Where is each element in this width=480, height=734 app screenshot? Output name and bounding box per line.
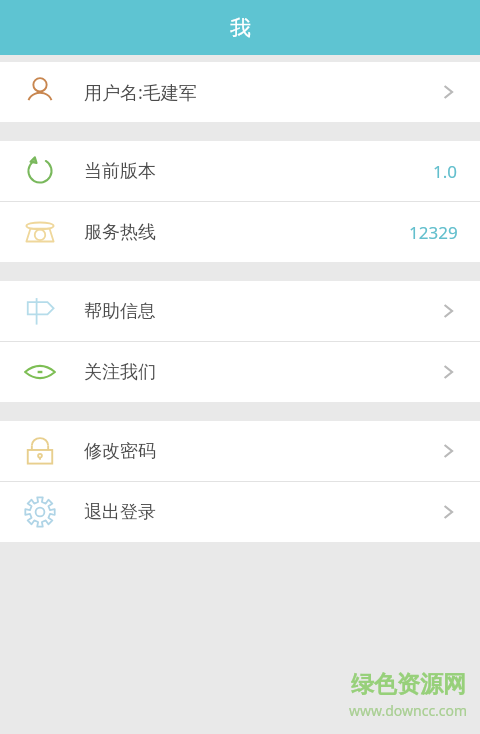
staticText: 帮助信息 (84, 300, 156, 323)
button[interactable]: 用户名:毛建军 (0, 62, 480, 122)
other: Open (438, 502, 458, 522)
other: Open (438, 441, 458, 461)
staticText: 修改密码 (84, 440, 156, 463)
button[interactable]: 当前版本 (0, 141, 480, 201)
button[interactable]: 退出登录 (0, 482, 480, 542)
other: Open (438, 301, 458, 321)
staticText: 1.0 (433, 160, 458, 183)
staticText: 我 (230, 15, 251, 41)
staticText: 12329 (409, 221, 458, 244)
other: Open (438, 362, 458, 382)
staticText: 服务热线 (84, 221, 156, 244)
button[interactable]: 修改密码 (0, 421, 480, 481)
staticText: 退出登录 (84, 501, 156, 524)
other: Open (438, 82, 458, 102)
staticText: www.downcc.com (349, 701, 468, 720)
staticText: 当前版本 (84, 160, 156, 183)
staticText: 绿色资源网 (351, 670, 466, 699)
button[interactable]: 关注我们 (0, 342, 480, 402)
staticText: 用户名:毛建军 (84, 80, 197, 105)
button[interactable]: 服务热线 (0, 202, 480, 262)
button[interactable]: 帮助信息 (0, 281, 480, 341)
staticText: 关注我们 (84, 361, 156, 384)
